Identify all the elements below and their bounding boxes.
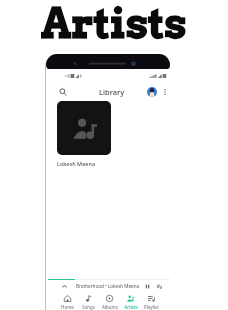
button[interactable]: Expand player xyxy=(59,281,69,291)
button[interactable] xyxy=(57,101,111,155)
staticText: Artists xyxy=(124,304,138,310)
staticText: Library xyxy=(99,87,125,97)
button[interactable]: Pause xyxy=(142,281,152,291)
staticText: Lokesh Meena xyxy=(57,160,96,167)
staticText: Brotherhood • Lokesh Meena xyxy=(76,283,140,289)
button[interactable]: Queue xyxy=(154,281,164,291)
button[interactable]: Search xyxy=(56,85,70,99)
button[interactable]: More options xyxy=(159,86,171,98)
button[interactable]: Account xyxy=(145,85,159,99)
staticText: Artists xyxy=(41,0,187,42)
button[interactable]: Home xyxy=(56,291,78,310)
button[interactable]: Albums xyxy=(99,291,120,310)
staticText: Albums xyxy=(102,304,118,310)
staticText: Playlist xyxy=(144,304,159,310)
button[interactable]: Artists xyxy=(120,291,141,310)
staticText: Songs xyxy=(82,304,95,310)
staticText: Home xyxy=(61,304,74,310)
button[interactable]: Playlist xyxy=(141,291,162,310)
button[interactable]: Songs xyxy=(78,291,99,310)
